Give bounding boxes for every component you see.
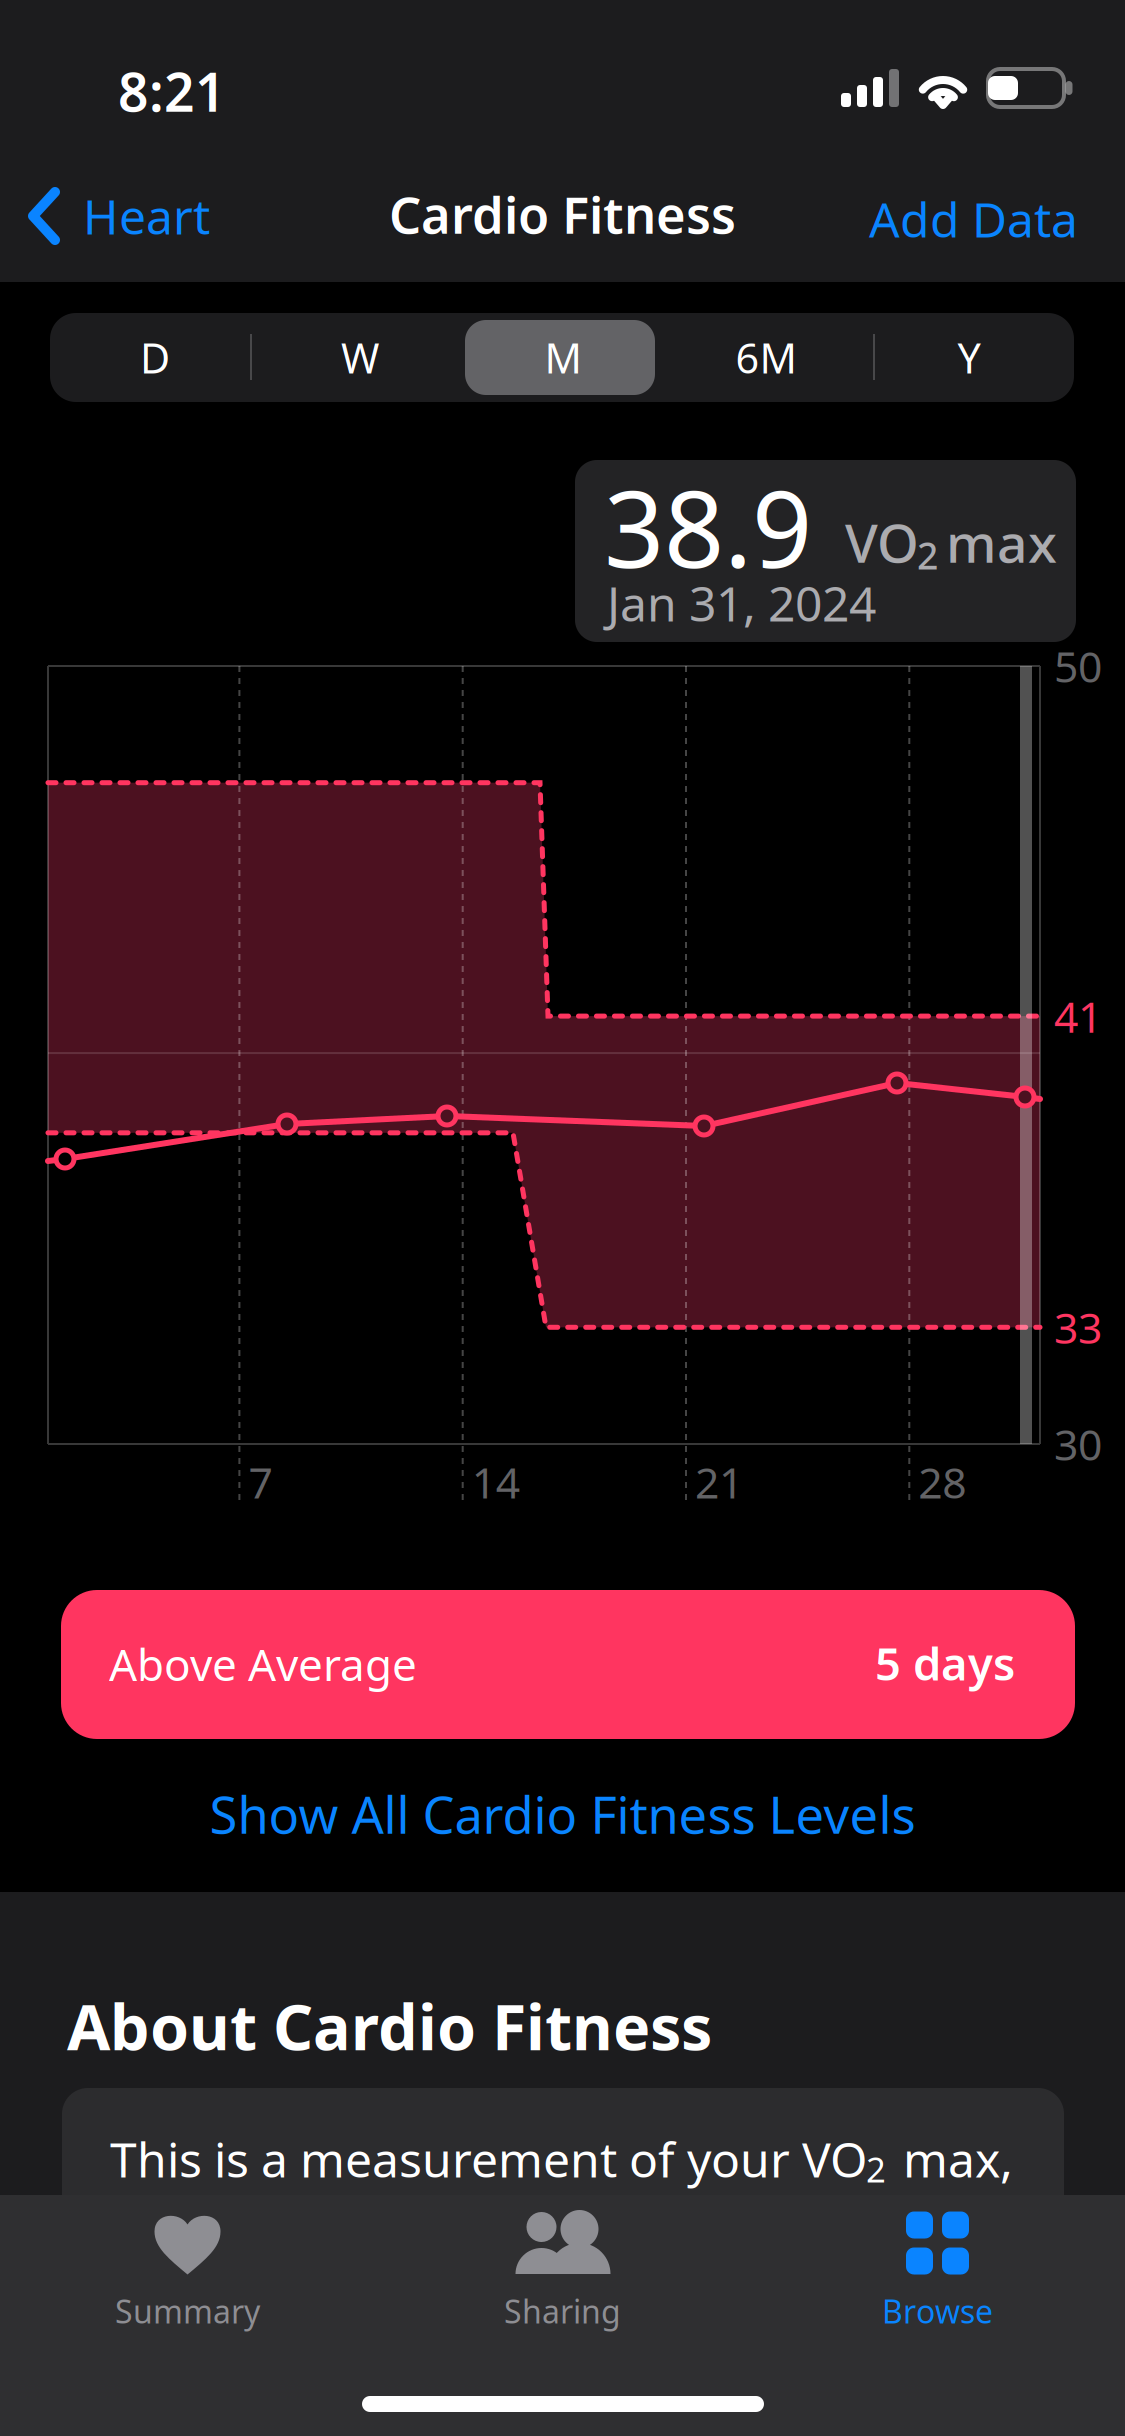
staticText: Sharing	[504, 2290, 621, 2332]
staticText: Heart	[83, 184, 210, 248]
staticText: 38.9	[604, 457, 812, 597]
staticText: This is a measurement of your VO	[110, 2127, 867, 2191]
staticText: 28	[918, 1454, 966, 1510]
staticText: VO	[845, 507, 919, 577]
button[interactable]: Heart	[0, 0, 1125, 2436]
staticText: 30	[1054, 1416, 1102, 1472]
staticText: M	[544, 330, 581, 385]
staticText: 7	[248, 1454, 272, 1510]
button[interactable]: W	[0, 0, 1125, 2436]
staticText: Summary	[115, 2290, 260, 2332]
staticText: 6M	[735, 330, 796, 385]
staticText: Jan 31, 2024	[607, 571, 876, 635]
staticText: Cardio Fitness	[389, 180, 736, 248]
staticText: 5 days	[875, 1633, 1015, 1693]
staticText: max	[946, 507, 1057, 577]
staticText: 14	[472, 1454, 520, 1510]
staticText: About Cardio Fitness	[67, 1984, 712, 2068]
staticText: 21	[695, 1454, 743, 1510]
staticText: 2	[866, 2146, 886, 2192]
button[interactable]: Add Data	[0, 0, 1125, 2436]
staticText: 33	[1054, 1299, 1102, 1356]
staticText: Browse	[882, 2290, 993, 2332]
staticText: max,	[903, 2127, 1013, 2191]
button[interactable]: Summary	[0, 0, 1125, 2436]
staticText: 8:21	[118, 56, 226, 126]
button[interactable]: Browse	[0, 0, 1125, 2436]
staticText: Add Data	[869, 187, 1078, 251]
button[interactable]: Y	[0, 0, 1125, 2436]
button[interactable]: Above Average	[0, 0, 1125, 2436]
staticText: Show All Cardio Fitness Levels	[209, 1780, 915, 1848]
staticText: Above Average	[109, 1635, 417, 1693]
staticText: 2	[917, 530, 938, 580]
staticText: D	[140, 330, 170, 385]
staticText: 41	[1054, 988, 1102, 1044]
button[interactable]: Show All Cardio Fitness Levels	[0, 0, 1125, 2436]
staticText: W	[341, 330, 379, 385]
button[interactable]: D	[0, 0, 1125, 2436]
staticText: 50	[1054, 638, 1102, 694]
button[interactable]: Sharing	[0, 0, 1125, 2436]
button[interactable]: 6M	[0, 0, 1125, 2436]
button[interactable]: M	[0, 0, 1125, 2436]
staticText: Y	[957, 330, 980, 385]
